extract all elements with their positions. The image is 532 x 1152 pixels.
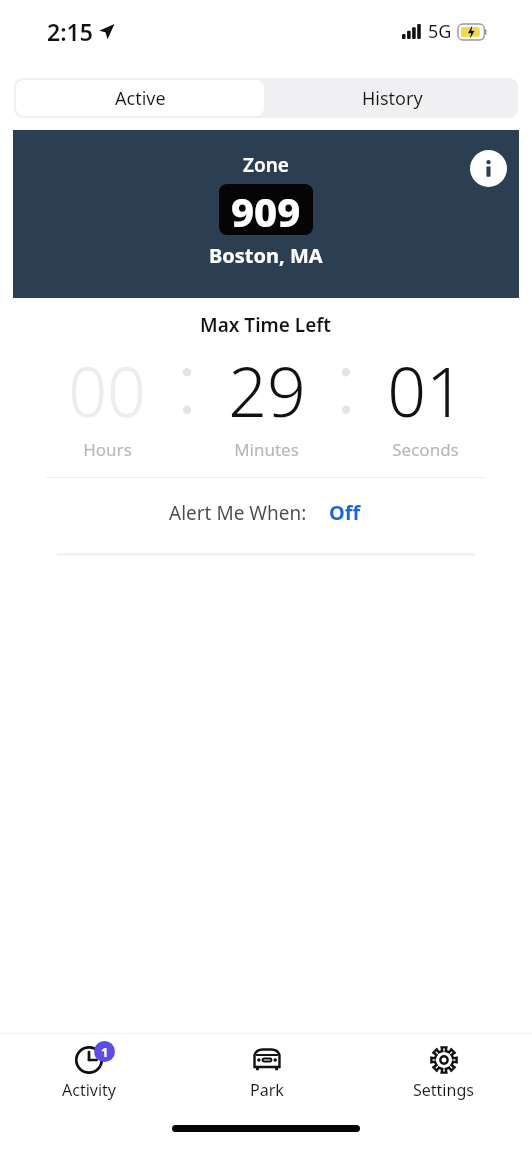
staticText: Activity	[62, 1079, 117, 1101]
staticText: 909	[231, 184, 301, 235]
button[interactable]: Off	[327, 497, 363, 528]
staticText: Park	[250, 1079, 284, 1101]
staticText: Settings	[413, 1079, 474, 1101]
staticText: Off	[329, 499, 361, 526]
staticText: Alert Me When:	[169, 500, 307, 526]
staticText: 2:15	[47, 16, 93, 47]
staticText: 01	[387, 344, 465, 437]
staticText: 5G	[428, 19, 452, 44]
staticText: Active	[115, 86, 166, 111]
staticText: History	[362, 86, 423, 111]
other: Activity	[73, 1044, 105, 1076]
button[interactable]: Activity	[0, 1034, 178, 1112]
staticText: Max Time Left	[200, 312, 332, 338]
button[interactable]: History	[266, 78, 518, 118]
staticText: Seconds	[392, 438, 459, 461]
button[interactable]: Settings	[355, 1034, 532, 1112]
staticText: 00	[68, 344, 146, 437]
button[interactable]: Active	[16, 80, 264, 116]
staticText: 1	[101, 1043, 109, 1061]
staticText: Hours	[83, 438, 132, 461]
staticText: 29	[228, 344, 306, 437]
button[interactable]: Information	[468, 148, 508, 188]
staticText: Boston, MA	[209, 242, 323, 269]
other: Settings	[428, 1044, 460, 1076]
staticText: Zone	[243, 152, 289, 178]
staticText: Minutes	[234, 438, 299, 461]
other: Park	[251, 1044, 283, 1076]
button[interactable]: Park	[178, 1034, 355, 1112]
